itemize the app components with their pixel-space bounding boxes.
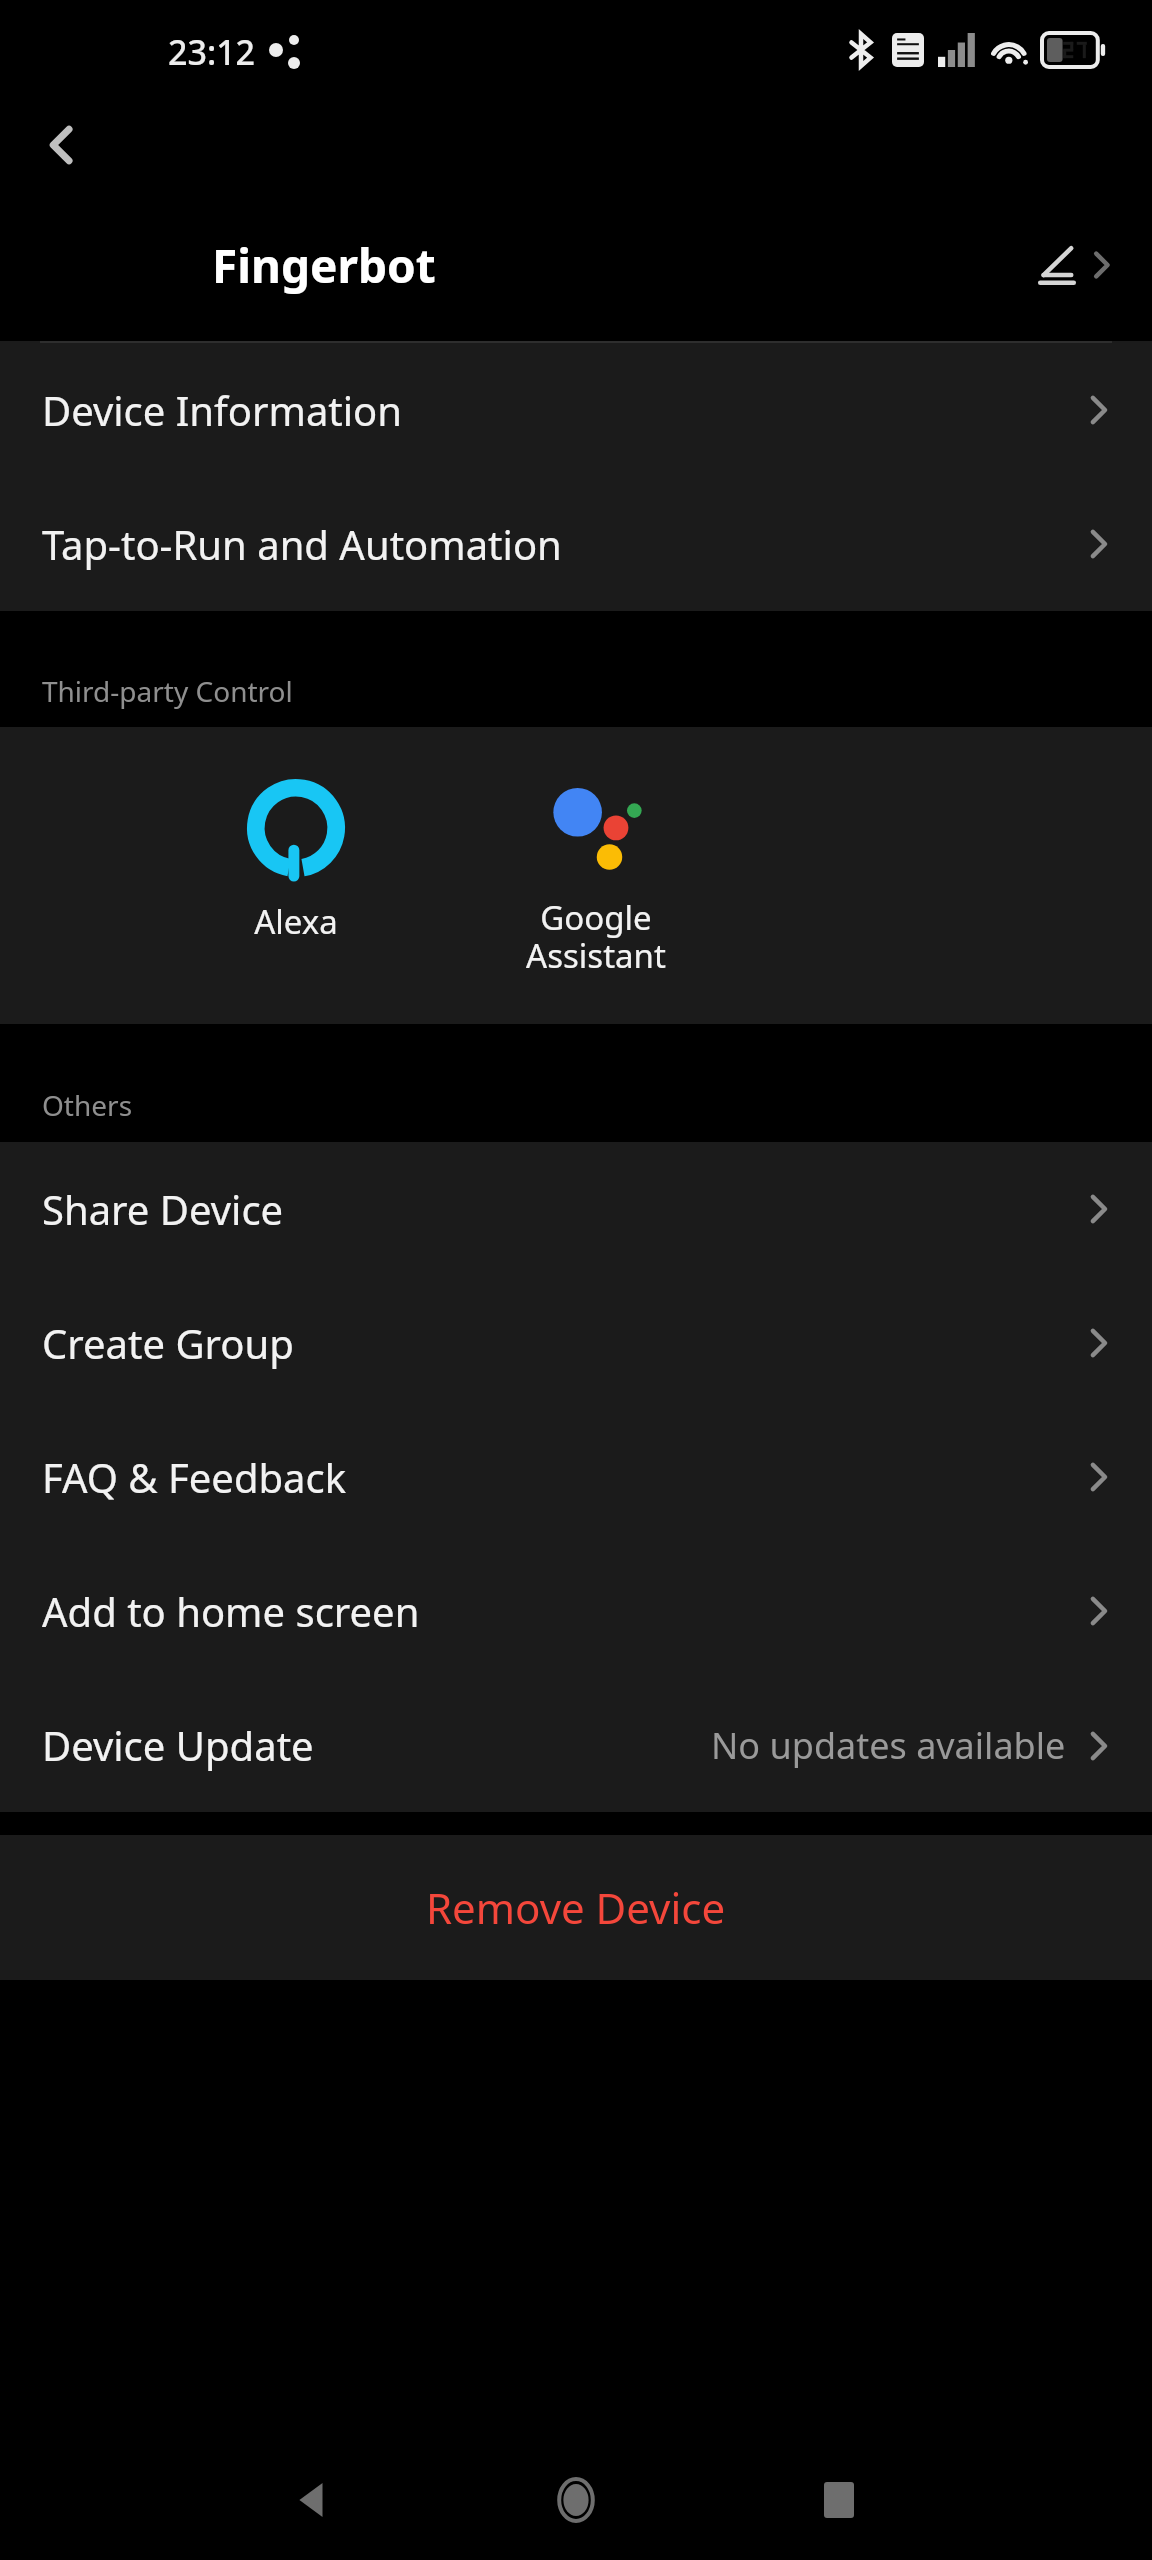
staticText: Remove Device bbox=[426, 1879, 726, 1936]
button[interactable]: Back bbox=[20, 103, 104, 187]
button[interactable]: Share Device bbox=[0, 1142, 1152, 1276]
button[interactable]: Google Assistant bbox=[476, 727, 716, 1024]
staticText: Tap-to-Run and Automation bbox=[42, 517, 562, 571]
button[interactable]: Add to home screen bbox=[0, 1544, 1152, 1678]
staticText: Google Assistant bbox=[526, 895, 666, 977]
staticText: Others bbox=[42, 1086, 133, 1124]
staticText: No updates available bbox=[711, 1721, 1066, 1770]
staticText: Share Device bbox=[42, 1182, 284, 1236]
button[interactable]: Home bbox=[528, 2452, 624, 2548]
button[interactable]: Remove Device bbox=[0, 1835, 1152, 1980]
staticText: 23:12 bbox=[168, 29, 256, 75]
staticText: Alexa bbox=[254, 899, 338, 944]
button[interactable]: Create Group bbox=[0, 1276, 1152, 1410]
button[interactable]: Device Information bbox=[0, 343, 1152, 477]
button[interactable]: Device Update bbox=[0, 1678, 1152, 1812]
button[interactable]: Tap-to-Run and Automation bbox=[0, 477, 1152, 611]
staticText: Add to home screen bbox=[42, 1584, 420, 1638]
staticText: Create Group bbox=[42, 1316, 294, 1370]
staticText: Device Information bbox=[42, 383, 403, 437]
button[interactable]: Alexa bbox=[176, 727, 416, 1024]
button[interactable]: Rename device bbox=[1028, 232, 1124, 298]
staticText: Device Update bbox=[42, 1718, 314, 1772]
button[interactable]: Recent apps bbox=[791, 2452, 887, 2548]
button[interactable]: Back bbox=[265, 2452, 361, 2548]
staticText: FAQ & Feedback bbox=[42, 1450, 347, 1504]
staticText: Fingerbot bbox=[212, 234, 436, 297]
button[interactable]: FAQ & Feedback bbox=[0, 1410, 1152, 1544]
staticText: Third-party Control bbox=[42, 672, 293, 710]
